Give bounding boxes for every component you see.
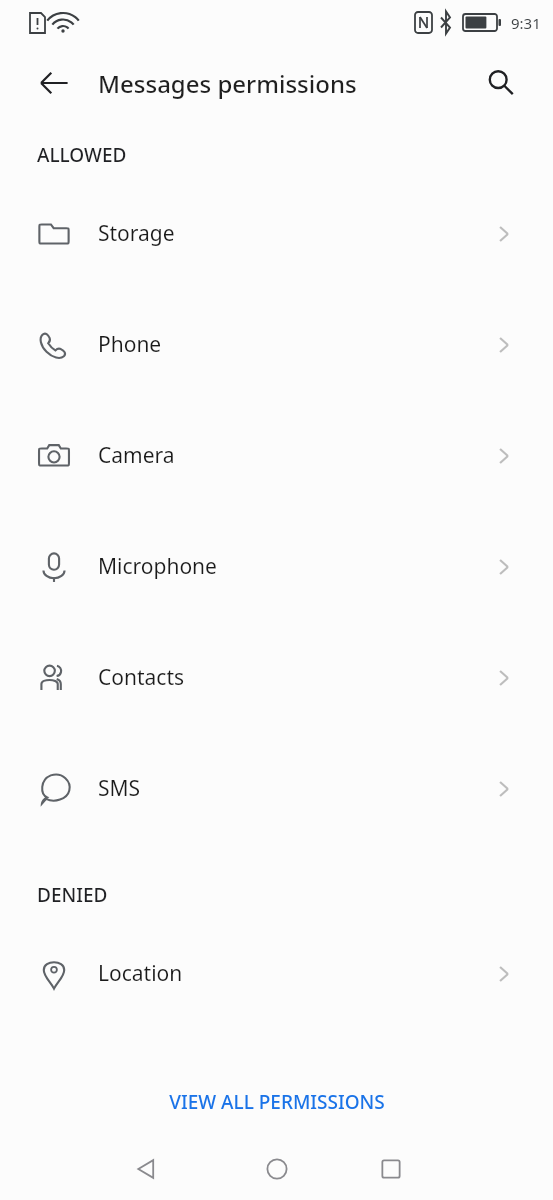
staticText: 9:31 (511, 13, 541, 33)
button[interactable]: Location (0, 918, 553, 1029)
button[interactable]: Camera (0, 400, 553, 511)
button[interactable]: Storage (0, 178, 553, 289)
button[interactable]: Back (116, 1139, 176, 1199)
button[interactable]: Contacts (0, 622, 553, 733)
staticText: ALLOWED (37, 142, 127, 168)
staticText: DENIED (37, 882, 108, 908)
button[interactable]: Back (22, 51, 86, 115)
button[interactable]: SMS (0, 733, 553, 844)
button[interactable]: Microphone (0, 511, 553, 622)
staticText: Camera (98, 441, 493, 470)
staticText: Location (98, 959, 493, 988)
staticText: Phone (98, 330, 493, 359)
staticText: Microphone (98, 552, 493, 581)
staticText: Storage (98, 219, 493, 248)
staticText: Contacts (98, 663, 493, 692)
button[interactable]: Search (473, 55, 529, 111)
staticText: VIEW ALL PERMISSIONS (169, 1089, 385, 1115)
staticText: SMS (98, 774, 493, 803)
button[interactable]: Home (247, 1139, 307, 1199)
staticText: Messages permissions (98, 67, 357, 100)
button[interactable]: Phone (0, 289, 553, 400)
button[interactable]: VIEW ALL PERMISSIONS (153, 1081, 401, 1123)
button[interactable]: Recents (361, 1139, 421, 1199)
